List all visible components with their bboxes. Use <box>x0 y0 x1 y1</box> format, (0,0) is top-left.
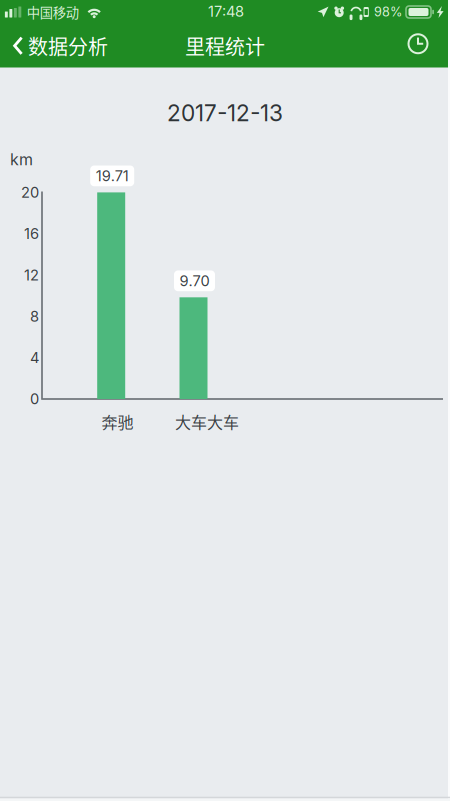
staticText: 98% <box>374 4 402 20</box>
staticText: 2017-12-13 <box>167 99 283 127</box>
staticText: 12 <box>24 266 39 284</box>
staticText: 里程统计 <box>185 31 265 60</box>
staticText: 8 <box>30 307 39 325</box>
staticText: 9.70 <box>179 272 209 290</box>
staticText: 19.71 <box>96 167 129 185</box>
staticText: 奔驰 <box>101 410 133 433</box>
button[interactable]: 数据分析 <box>0 20 118 71</box>
staticText: 0 <box>30 390 39 408</box>
staticText: 20 <box>21 183 39 201</box>
staticText: 中国移动 <box>27 2 79 22</box>
staticText: km <box>10 150 33 169</box>
staticText: 数据分析 <box>28 31 108 60</box>
staticText: 大车大车 <box>175 410 239 433</box>
staticText: 16 <box>24 225 39 242</box>
staticText: 17:48 <box>208 3 244 20</box>
staticText: 4 <box>30 349 39 366</box>
button[interactable]: 历史记录 <box>391 25 450 67</box>
